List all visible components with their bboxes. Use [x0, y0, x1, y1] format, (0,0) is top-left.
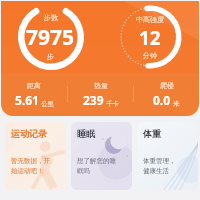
staticText: 步	[47, 52, 54, 61]
button[interactable]: 运动记录	[5, 122, 66, 190]
button[interactable]: 睡眠	[71, 122, 132, 190]
staticText: 运动记录	[11, 128, 47, 139]
button[interactable]: 体重	[137, 122, 198, 190]
staticText: 千卡	[106, 100, 119, 108]
staticText: 分钟	[143, 51, 157, 60]
button[interactable]: 中高强度	[100, 1, 199, 73]
staticText: 暂无数据，开 始运动吧！	[11, 157, 50, 175]
staticText: 12	[139, 25, 161, 51]
button[interactable]: 爬楼	[134, 81, 199, 108]
staticText: 热量	[94, 81, 108, 90]
staticText: 239	[83, 92, 104, 108]
staticText: 距离	[27, 81, 41, 90]
staticText: 0.0	[153, 92, 171, 108]
staticText: 睡眠	[77, 128, 95, 139]
staticText: 体重管理， 健康生活	[143, 157, 176, 175]
staticText: 5.61	[15, 92, 39, 108]
button[interactable]: 距离	[1, 81, 67, 108]
staticText: 米	[173, 100, 180, 108]
staticText: 想了解您的睡 眠吗	[77, 157, 116, 175]
staticText: 爬楼	[160, 81, 174, 90]
staticText: 公里	[41, 100, 54, 108]
button[interactable]: 热量	[68, 81, 133, 108]
staticText: 体重	[143, 128, 161, 139]
staticText: 中高强度	[136, 15, 164, 24]
staticText: 7975	[26, 23, 75, 52]
staticText: 步数	[44, 13, 58, 22]
button[interactable]: 步数	[1, 1, 100, 73]
